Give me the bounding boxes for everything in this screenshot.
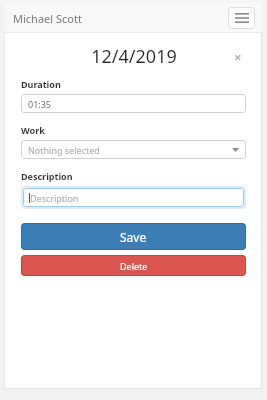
button[interactable]: Close bbox=[230, 48, 246, 64]
button[interactable]: Menu bbox=[228, 7, 255, 29]
staticText: Delete bbox=[120, 260, 148, 272]
button[interactable]: Save bbox=[21, 223, 246, 250]
staticText: Description bbox=[30, 192, 79, 204]
staticText: × bbox=[234, 48, 242, 64]
button[interactable]: Nothing selected bbox=[21, 140, 246, 159]
staticText: 12/4/2019 bbox=[91, 44, 177, 68]
staticText: Work bbox=[21, 124, 45, 136]
button[interactable]: Delete bbox=[21, 255, 246, 276]
staticText: 01:35 bbox=[28, 98, 52, 110]
button[interactable]: Michael Scott bbox=[13, 11, 82, 26]
staticText: Nothing selected bbox=[28, 144, 100, 156]
button[interactable]: 01:35 bbox=[21, 94, 246, 113]
staticText: Duration bbox=[21, 78, 61, 90]
staticText: Description bbox=[21, 170, 73, 182]
button[interactable]: Description bbox=[23, 188, 244, 207]
staticText: Save bbox=[120, 229, 147, 245]
